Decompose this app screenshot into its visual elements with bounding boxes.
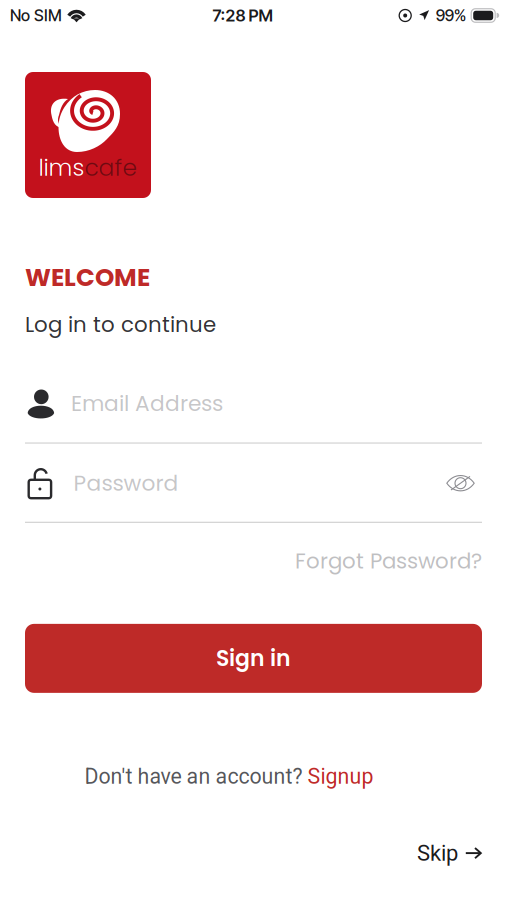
staticText: lims [38,151,84,184]
staticText: Don't have an account? [84,764,307,789]
staticText: WELCOME [25,260,150,294]
button[interactable]: Forgot Password? [295,546,482,576]
button[interactable]: Sign in [25,624,482,693]
staticText: Log in to continue [25,309,216,339]
staticText: cafe [84,151,137,184]
staticText: 99% [436,6,467,25]
staticText: Password [73,468,178,498]
button[interactable]: Skip [417,840,482,866]
button[interactable]: Show password [446,468,482,499]
staticText: No SIM [10,6,62,25]
staticText: Sign in [216,643,291,674]
staticText: Skip [417,840,458,866]
staticText: Forgot Password? [295,546,482,576]
staticText: Signup [307,764,373,789]
button[interactable]: Email Address [25,388,482,418]
button[interactable]: Don't have an account? [84,764,373,789]
staticText: 7:28 PM [213,5,273,25]
staticText: Email Address [71,388,223,419]
button[interactable]: Password [25,468,446,499]
